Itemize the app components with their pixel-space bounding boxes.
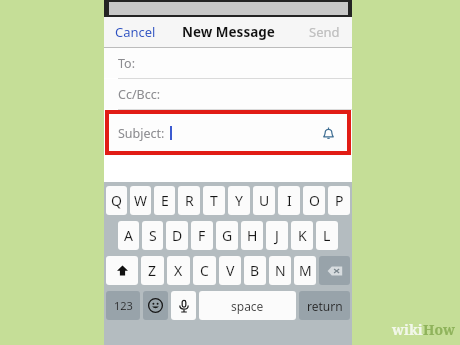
staticText: Send (309, 23, 340, 41)
button[interactable]: F (191, 221, 213, 250)
button[interactable]: K (291, 221, 313, 250)
button[interactable]: L (316, 221, 338, 250)
staticText: A (124, 226, 133, 245)
button[interactable]: Z (141, 256, 164, 285)
button[interactable]: Emoji (143, 291, 168, 320)
button[interactable]: Dictation (171, 291, 196, 320)
button[interactable]: Shift (106, 256, 138, 285)
staticText: X (174, 261, 183, 280)
staticText: wiki (392, 320, 423, 339)
button[interactable]: X (167, 256, 190, 285)
staticText: Y (235, 191, 243, 210)
staticText: 123 (114, 298, 133, 313)
staticText: return (307, 298, 343, 314)
staticText: V (226, 261, 235, 280)
button[interactable]: To: (104, 48, 352, 78)
button[interactable]: return (299, 291, 350, 320)
button[interactable]: space (199, 291, 296, 320)
staticText: New Message (182, 23, 275, 41)
button[interactable]: U (253, 186, 275, 215)
staticText: M (299, 261, 312, 280)
button[interactable]: Notify me (316, 121, 340, 145)
button[interactable]: Subject: (104, 110, 352, 156)
button[interactable]: M (294, 256, 316, 285)
button[interactable]: I (278, 186, 300, 215)
staticText: P (335, 191, 344, 210)
button[interactable]: G (216, 221, 238, 250)
button[interactable]: A (118, 221, 139, 250)
staticText: U (259, 191, 270, 210)
button[interactable]: O (303, 186, 325, 215)
button[interactable]: Q (106, 186, 127, 215)
button[interactable]: C (193, 256, 216, 285)
button[interactable]: V (219, 256, 241, 285)
button[interactable]: Send (306, 19, 343, 45)
staticText: C (200, 261, 209, 280)
button[interactable]: S (142, 221, 163, 250)
button[interactable]: E (154, 186, 175, 215)
staticText: F (198, 226, 206, 245)
button[interactable]: P (328, 186, 350, 215)
staticText: H (247, 226, 258, 245)
staticText: S (149, 226, 157, 245)
staticText: L (323, 226, 331, 245)
button[interactable]: Cancel (112, 19, 159, 45)
button[interactable]: N (269, 256, 291, 285)
staticText: N (275, 261, 286, 280)
staticText: Cancel (115, 23, 156, 41)
staticText: J (275, 226, 279, 245)
staticText: I (287, 191, 292, 210)
button[interactable]: T (203, 186, 225, 215)
staticText: D (172, 226, 183, 245)
button[interactable]: R (178, 186, 200, 215)
button[interactable]: H (241, 221, 263, 250)
button[interactable]: J (266, 221, 288, 250)
staticText: Z (148, 261, 157, 280)
button[interactable]: Backspace (319, 256, 350, 285)
button[interactable]: Y (228, 186, 250, 215)
staticText: Cc/Bcc: (118, 86, 161, 103)
button[interactable]: Cc/Bcc: (104, 79, 352, 109)
staticText: G (222, 226, 233, 245)
staticText: T (210, 191, 218, 210)
staticText: W (134, 191, 148, 210)
staticText: R (185, 191, 194, 210)
staticText: K (298, 226, 307, 245)
staticText: O (309, 191, 320, 210)
button[interactable]: B (244, 256, 266, 285)
staticText: Subject: (118, 125, 165, 142)
button[interactable]: 123 (106, 291, 140, 320)
button[interactable]: D (166, 221, 188, 250)
staticText: space (231, 298, 264, 314)
staticText: To: (118, 55, 135, 72)
staticText: E (161, 191, 169, 210)
button[interactable]: W (130, 186, 151, 215)
staticText: B (250, 261, 260, 280)
staticText: Q (111, 191, 122, 210)
staticText: How (423, 320, 456, 339)
